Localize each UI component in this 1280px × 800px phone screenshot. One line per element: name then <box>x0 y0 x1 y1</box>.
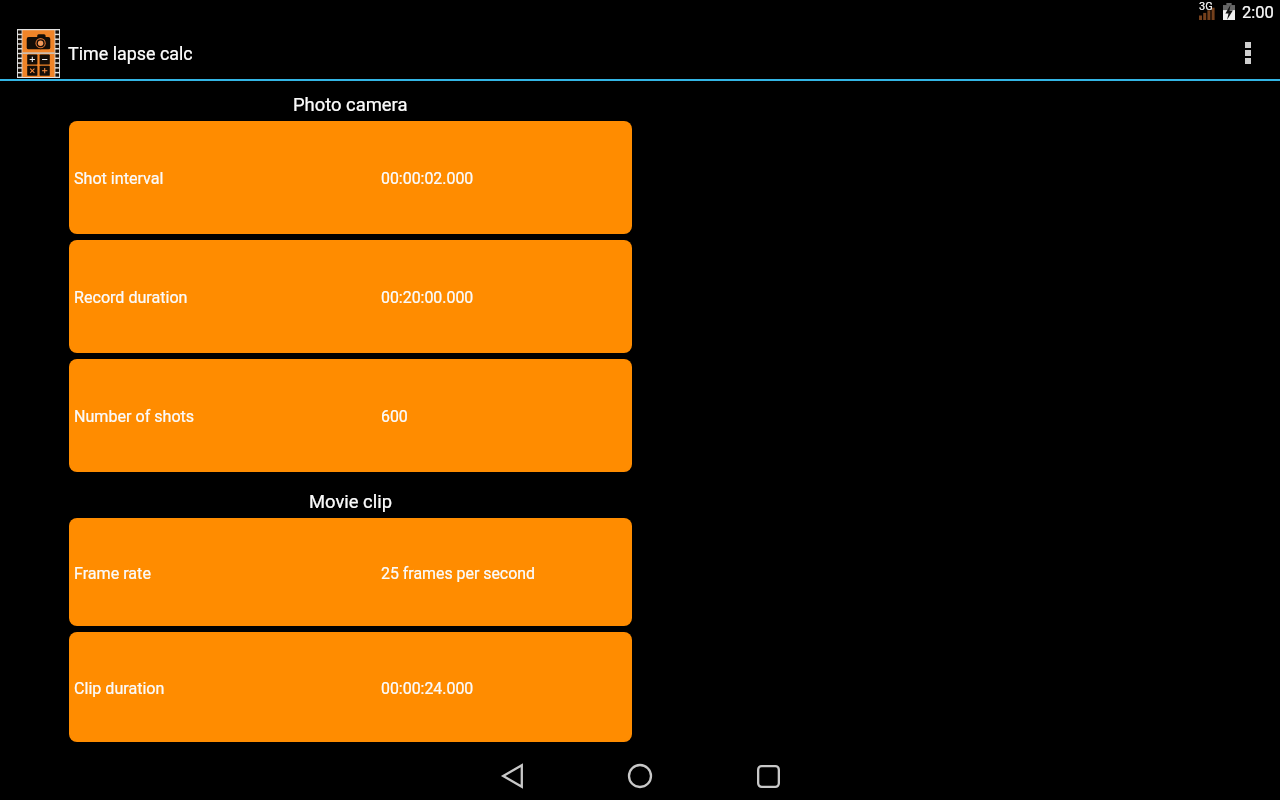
staticText: 3G <box>1199 0 1213 13</box>
staticText: Movie clip <box>309 491 393 513</box>
staticText: 00:00:24.000 <box>381 679 474 698</box>
button[interactable]: Number of shots <box>69 359 632 472</box>
button[interactable]: More options <box>1220 26 1276 79</box>
button[interactable]: Frame rate <box>69 518 632 626</box>
staticText: Photo camera <box>293 94 408 116</box>
staticText: 00:00:02.000 <box>381 169 474 188</box>
staticText: Shot interval <box>74 169 164 188</box>
staticText: Frame rate <box>74 564 151 583</box>
button[interactable]: Home <box>608 752 672 800</box>
staticText: Number of shots <box>74 407 195 426</box>
button[interactable]: Back <box>480 752 544 800</box>
staticText: 25 frames per second <box>381 564 535 583</box>
staticText: Record duration <box>74 288 188 307</box>
staticText: Time lapse calc <box>68 43 193 64</box>
button[interactable]: Shot interval <box>69 121 632 234</box>
staticText: 00:20:00.000 <box>381 288 474 307</box>
staticText: 600 <box>381 407 408 426</box>
staticText: 2:00 <box>1242 3 1274 22</box>
staticText: Clip duration <box>74 679 165 698</box>
button[interactable]: Recent apps <box>736 752 800 800</box>
button[interactable]: Record duration <box>69 240 632 353</box>
button[interactable]: Clip duration <box>69 632 632 742</box>
